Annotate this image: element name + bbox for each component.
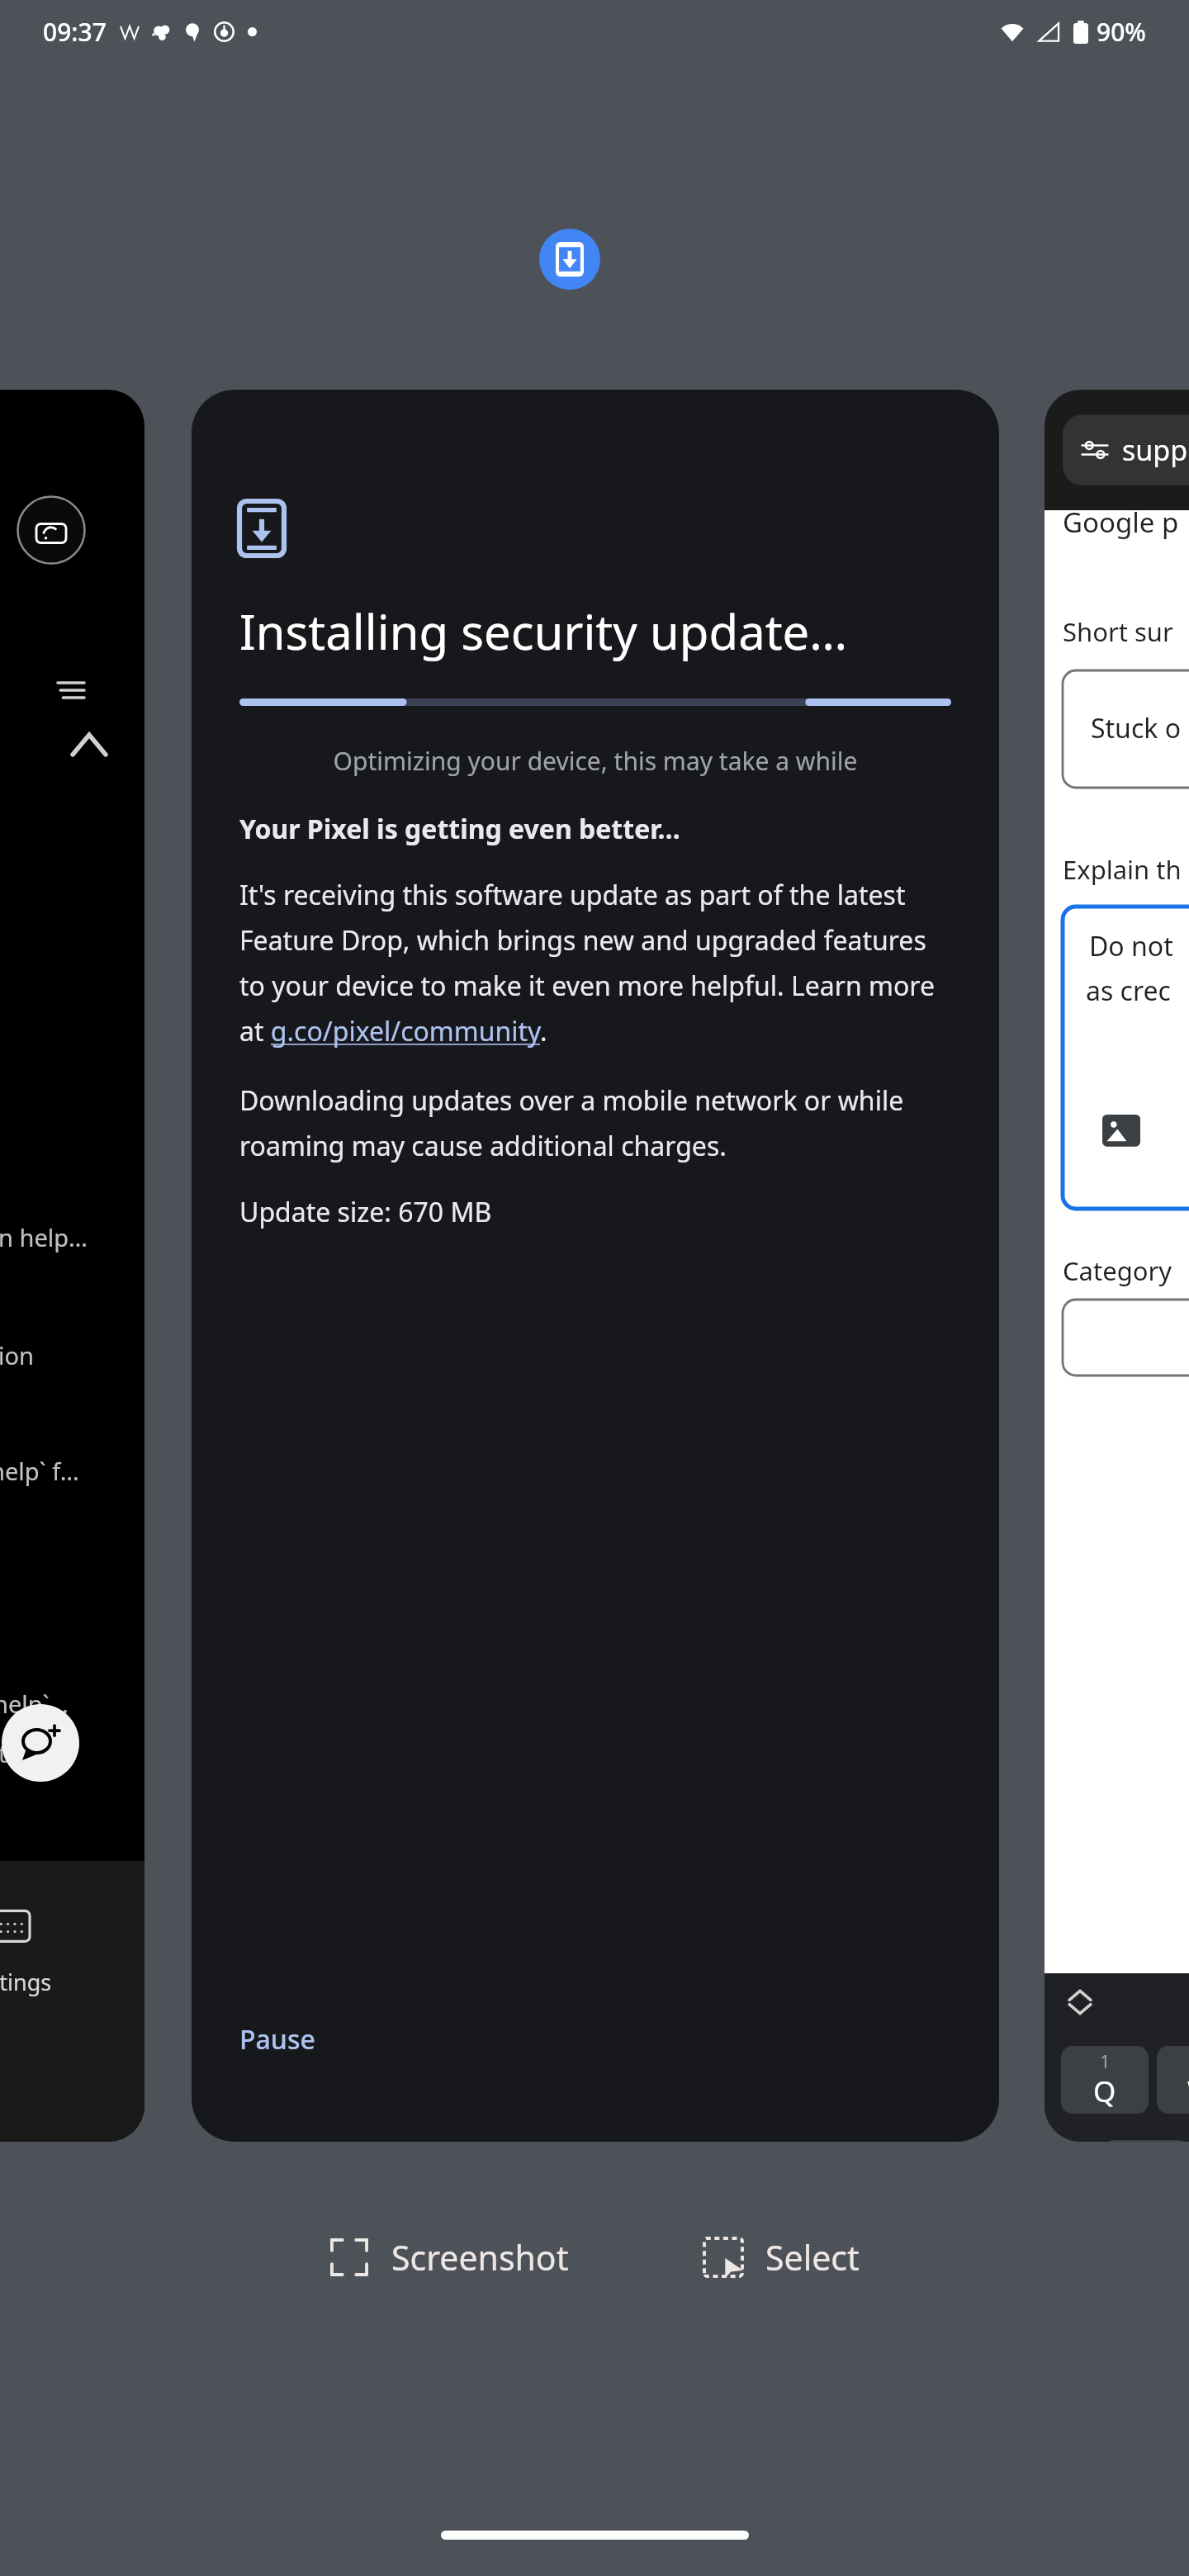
button[interactable]: New chat [2, 1704, 79, 1782]
staticText: 90% [1097, 15, 1146, 49]
staticText: Your Pixel is getting even better… [239, 811, 680, 847]
button[interactable]: Select [704, 2234, 860, 2280]
staticText: Short sur [1063, 614, 1173, 649]
staticText: Do not [1089, 928, 1173, 964]
staticText: 1 [1100, 2048, 1111, 2073]
staticText: Screenshot [391, 2234, 569, 2280]
button[interactable]: Pause [239, 2021, 315, 2057]
staticText: W [1187, 2072, 1189, 2111]
staticText: help` f… [0, 1455, 79, 1487]
staticText: Q [1093, 2072, 1116, 2111]
button[interactable]: supp [1045, 390, 1189, 2142]
button[interactable]: System update [539, 229, 600, 290]
staticText: Stuck o [1091, 710, 1182, 746]
staticText: Installing security update… [239, 599, 848, 664]
button[interactable]: Installing security update… [192, 390, 999, 2142]
staticText: as crec [1086, 973, 1171, 1009]
staticText: 09:37 [43, 15, 107, 49]
button[interactable]: 2 [1157, 2046, 1189, 2114]
staticText: Category [1063, 1253, 1172, 1288]
button[interactable]: 1 [1061, 2046, 1149, 2114]
staticText: Optimizing your device, this may take a … [239, 744, 951, 778]
button[interactable]: n help… [0, 390, 144, 2142]
staticText: Pause [239, 2021, 315, 2057]
staticText: Update size: 670 MB [239, 1194, 492, 1230]
button[interactable]: Screenshot [330, 2234, 569, 2280]
staticText: Select [765, 2234, 860, 2280]
button[interactable]: @ [1102, 2140, 1189, 2142]
staticText: help`… [0, 1688, 69, 1720]
staticText: etings [0, 1967, 52, 1997]
staticText: It's receiving this software update as p… [239, 877, 951, 1049]
staticText: tifica… [0, 1737, 72, 1769]
staticText: supp [1122, 431, 1188, 469]
staticText: ion [0, 1339, 34, 1371]
staticText: Downloading updates over a mobile networ… [239, 1082, 951, 1164]
staticText: Google p [1063, 504, 1179, 541]
staticText: n help… [0, 1221, 88, 1253]
staticText: Explain th [1063, 852, 1182, 887]
